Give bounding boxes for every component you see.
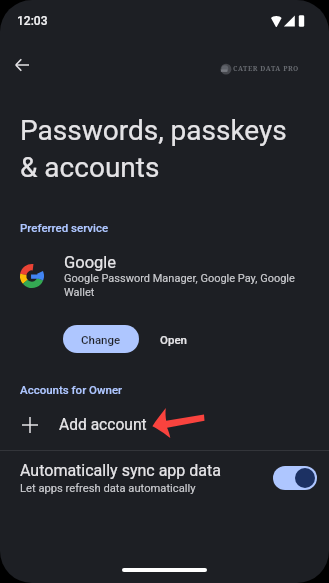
staticText: Let apps refresh data automatically — [20, 482, 196, 495]
button[interactable]: Change — [63, 325, 139, 353]
staticText: Google — [64, 253, 117, 272]
staticText: Preferred service — [20, 221, 109, 234]
staticText: Change — [81, 333, 121, 346]
button[interactable]: Automatically sync app data toggle — [273, 466, 317, 490]
staticText: Add account — [59, 416, 147, 434]
staticText: Automatically sync app data — [20, 461, 221, 480]
staticText: 12:03 — [17, 14, 48, 28]
staticText: CATER DATA PRO — [233, 64, 299, 73]
staticText: Accounts for Owner — [20, 383, 123, 396]
staticText: Passwords, passkeys & accounts — [20, 114, 320, 184]
staticText: Open — [160, 333, 187, 346]
button[interactable]: Automatically sync app data — [0, 452, 329, 504]
button[interactable]: Back — [2, 45, 42, 85]
button[interactable]: Add account — [0, 404, 329, 446]
staticText: Google Password Manager, Google Pay, Goo… — [64, 272, 306, 299]
button[interactable]: Open — [148, 325, 199, 353]
